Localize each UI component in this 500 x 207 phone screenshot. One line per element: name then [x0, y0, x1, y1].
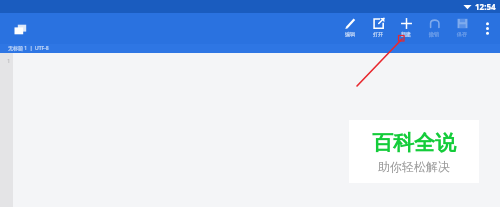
staticText: 新建: [401, 31, 411, 37]
staticText: 保存: [457, 31, 467, 37]
staticText: 编辑: [345, 31, 355, 37]
staticText: 打开: [373, 31, 383, 37]
button[interactable]: 打开: [364, 13, 392, 44]
button[interactable]: 新建: [392, 13, 420, 44]
staticText: 助你轻松解决: [378, 159, 450, 174]
staticText: 百科全说: [372, 130, 456, 156]
staticText: 12:54: [475, 1, 496, 12]
button[interactable]: Documents: [7, 16, 33, 42]
staticText: 1: [7, 57, 11, 65]
staticText: 无标题 1 | UTF-8: [8, 45, 49, 52]
button[interactable]: 保存: [448, 13, 476, 44]
button[interactable]: More options: [476, 13, 498, 44]
button[interactable]: 编辑: [336, 13, 364, 44]
staticText: 撤销: [429, 31, 439, 37]
button[interactable]: 撤销: [420, 13, 448, 44]
